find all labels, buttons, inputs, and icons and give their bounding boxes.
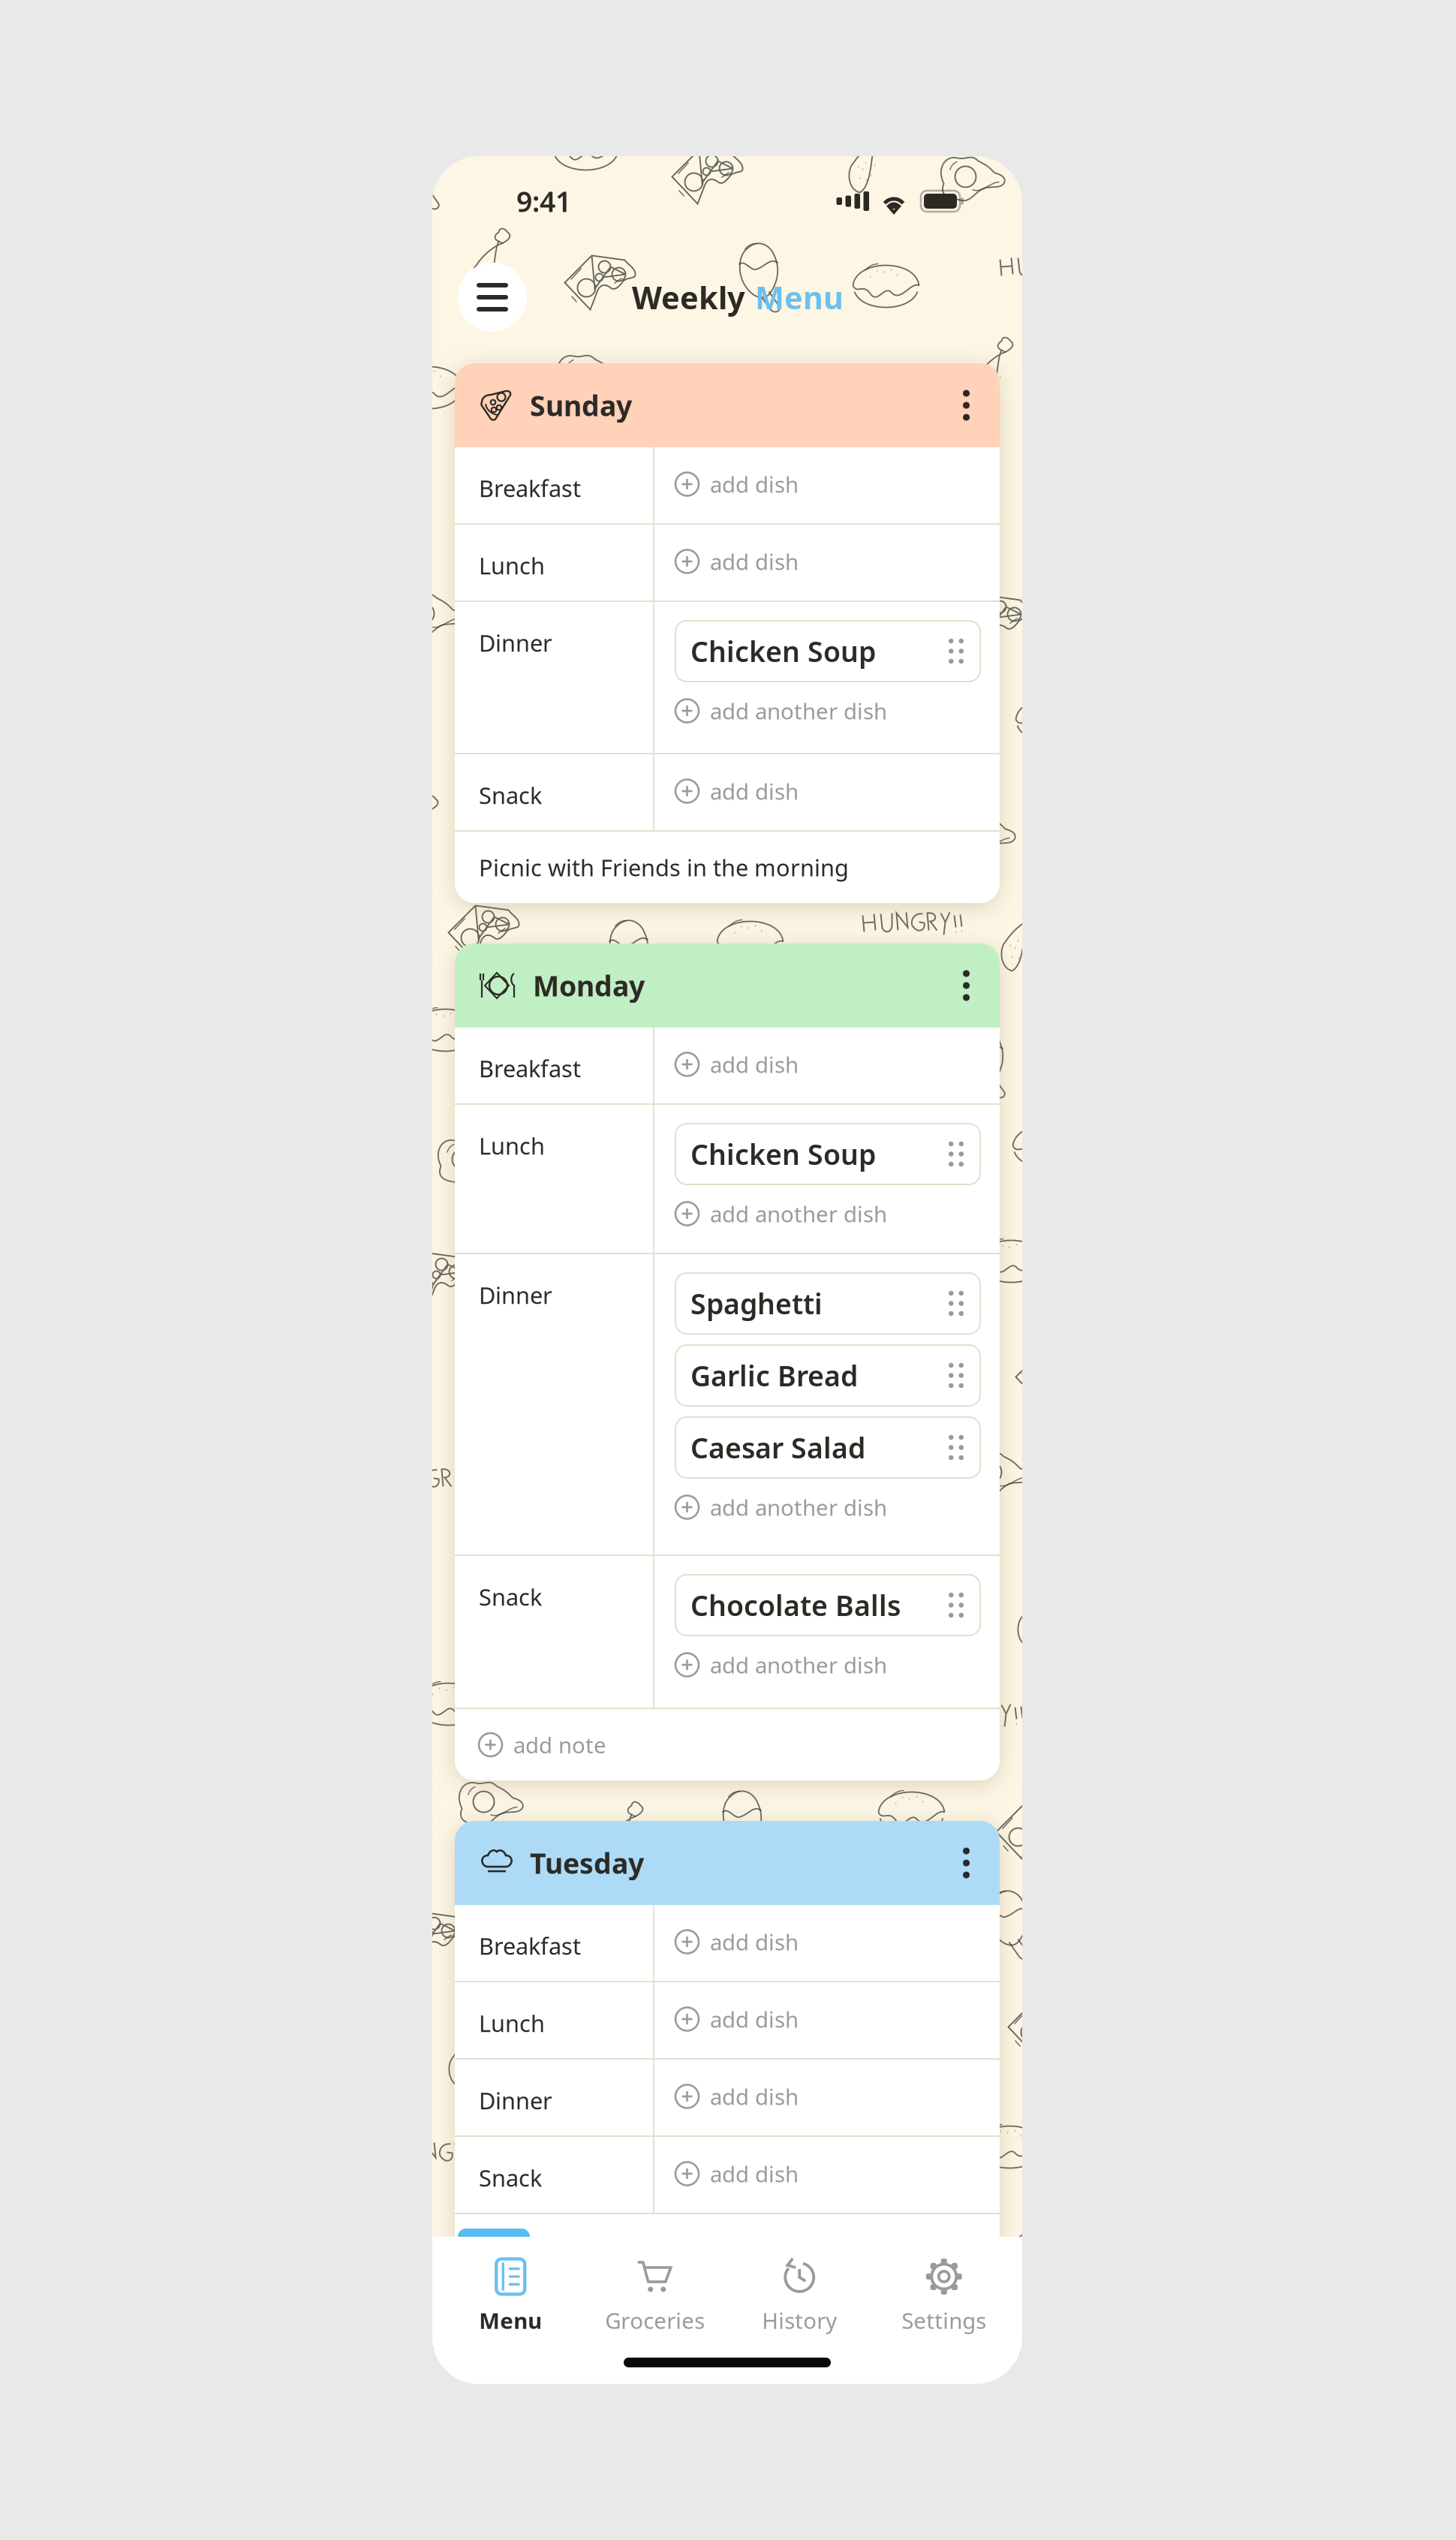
staticText: Garlic Bread [690,1357,858,1394]
button[interactable]: Garlic Bread [675,1345,980,1406]
staticText: Lunch [479,550,545,581]
staticText: add dish [710,1050,799,1079]
staticText: add dish [710,2082,799,2111]
staticText: Dinner [479,1280,552,1310]
staticText: Picnic with Friends in the morning [479,852,849,883]
button[interactable]: Spaghetti [675,1273,980,1334]
staticText: Snack [479,2162,542,2193]
staticText: add another dish [710,1199,887,1228]
staticText: add another dish [710,1493,887,1522]
button[interactable]: Day options [954,1839,979,1887]
staticText: add another dish [710,1650,887,1679]
button[interactable]: Day options [954,961,979,1010]
button[interactable]: add another dish [675,1647,980,1683]
button[interactable]: add note [455,1709,1000,1780]
button[interactable]: add dish [675,2156,980,2192]
button[interactable]: Menu [438,2249,583,2335]
staticText: Breakfast [479,1931,581,1961]
button[interactable]: add another dish [675,1489,980,1525]
staticText: Snack [479,780,542,810]
button[interactable]: Day options [954,381,979,430]
button[interactable]: add another dish [675,693,980,729]
staticText: Breakfast [479,473,581,503]
staticText: add dish [710,1927,799,1956]
staticText: Dinner [479,627,552,658]
staticText: add note [513,2235,606,2265]
staticText: Weekly [632,277,745,318]
staticText: add dish [710,2004,799,2034]
button[interactable]: Chicken Soup [675,1124,980,1184]
staticText: Chocolate Balls [690,1587,901,1624]
staticText: Sunday [530,387,632,424]
button[interactable]: Caesar Salad [675,1417,980,1478]
button[interactable]: add note [455,2214,1000,2286]
button[interactable]: add another dish [675,1196,980,1232]
staticText: Menu [479,2306,542,2335]
staticText: Chicken Soup [690,1135,876,1173]
staticText: Menu [755,277,844,318]
button[interactable]: add dish [675,1924,980,1960]
button[interactable]: Chicken Soup [675,621,980,682]
staticText: Dinner [479,2085,552,2116]
button[interactable]: add dish [675,1046,980,1082]
button[interactable]: Settings [872,2249,1016,2335]
staticText: Monday [533,967,645,1004]
staticText: Settings [902,2306,986,2335]
staticText: add dish [710,776,799,806]
staticText: Breakfast [479,1053,581,1084]
button[interactable]: Picnic with Friends in the morning [455,832,1000,903]
staticText: Tuesday [530,1844,644,1882]
button[interactable]: History [727,2249,872,2335]
button[interactable]: add dish [675,2078,980,2114]
staticText: Lunch [479,1130,545,1161]
staticText: Groceries [605,2306,705,2335]
staticText: History [762,2306,837,2335]
staticText: Caesar Salad [690,1429,865,1466]
staticText: Lunch [479,2008,545,2038]
button[interactable]: add dish [675,2001,980,2037]
staticText: add dish [710,469,799,499]
staticText: add dish [710,547,799,576]
button[interactable]: Chocolate Balls [675,1575,980,1636]
staticText: Spaghetti [690,1285,823,1322]
staticText: 9:41 [516,183,571,220]
staticText: add dish [710,2159,799,2188]
button[interactable]: Groceries [583,2249,727,2335]
button[interactable]: add dish [675,543,980,579]
staticText: Snack [479,1581,542,1612]
staticText: Chicken Soup [690,633,876,670]
button[interactable]: Open side menu [458,263,527,332]
staticText: add note [513,1730,606,1759]
button[interactable]: add dish [675,773,980,809]
staticText: add another dish [710,696,887,725]
button[interactable]: add dish [675,466,980,502]
